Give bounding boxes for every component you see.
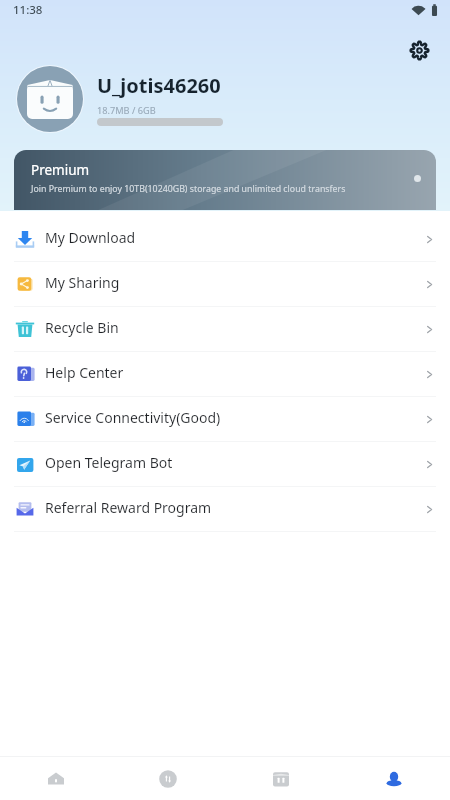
button[interactable]: Home	[0, 757, 112, 800]
staticText: Join Premium to enjoy 10TB(10240GB) stor…	[31, 183, 346, 195]
staticText: Help Center	[45, 363, 423, 382]
staticText: Referral Reward Program	[45, 498, 423, 517]
staticText: Open Telegram Bot	[45, 453, 423, 472]
staticText: Service Connectivity(Good)	[45, 408, 423, 427]
button[interactable]: My Download	[0, 217, 450, 262]
button[interactable]: Profile	[337, 757, 450, 800]
button[interactable]: My Sharing	[0, 262, 450, 307]
button[interactable]: Referral Reward Program	[0, 487, 450, 532]
staticText: Recycle Bin	[45, 318, 423, 337]
staticText: My Download	[45, 228, 423, 247]
button[interactable]: Premium	[14, 150, 436, 210]
button[interactable]: Help Center	[0, 352, 450, 397]
button[interactable]: Recycle Bin	[0, 307, 450, 352]
button[interactable]: Files	[224, 757, 337, 800]
staticText: 18.7MB / 6GB	[97, 104, 156, 117]
staticText: Premium	[31, 161, 90, 179]
button[interactable]: Open Telegram Bot	[0, 442, 450, 487]
staticText: 11:38	[13, 2, 43, 18]
button[interactable]: Settings	[399, 30, 439, 70]
button[interactable]: Transfers	[112, 757, 224, 800]
button[interactable]: Avatar	[17, 66, 83, 132]
staticText: U_jotis46260	[97, 72, 221, 99]
button[interactable]: Service Connectivity(Good)	[0, 397, 450, 442]
staticText: My Sharing	[45, 273, 423, 292]
